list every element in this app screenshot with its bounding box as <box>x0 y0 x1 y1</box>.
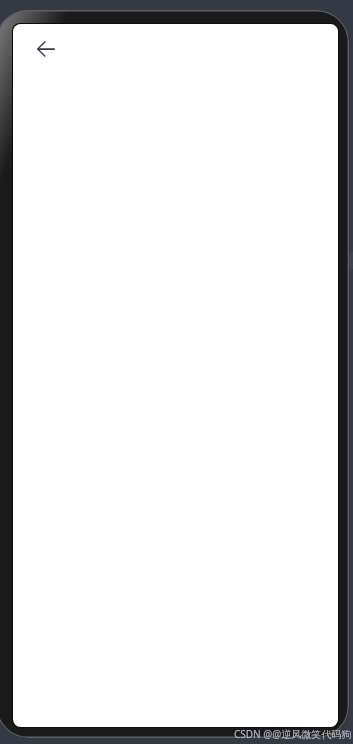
button[interactable]: Back <box>23 26 69 72</box>
staticText: CSDN @@逆风微笑代码狗 <box>234 727 352 741</box>
